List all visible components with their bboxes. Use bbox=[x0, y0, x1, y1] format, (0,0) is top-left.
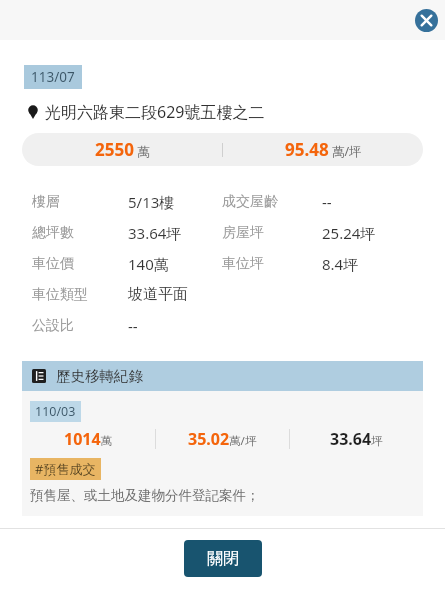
staticText: 總坪數 bbox=[32, 224, 74, 242]
staticText: 車位價 bbox=[32, 255, 74, 273]
staticText: 光明六路東二段629號五樓之二 bbox=[45, 101, 265, 123]
staticText: 95.48 萬/坪 bbox=[285, 138, 362, 161]
staticText: 預售屋、或土地及建物分件登記案件； bbox=[30, 487, 260, 504]
staticText: #預售成交 bbox=[35, 460, 96, 478]
staticText: 公設比 bbox=[32, 317, 74, 335]
staticText: 8.4坪 bbox=[322, 254, 359, 274]
staticText: 車位類型 bbox=[32, 286, 88, 304]
staticText: 5/13樓 bbox=[128, 192, 175, 212]
staticText: 113/07 bbox=[31, 68, 75, 86]
staticText: 關閉 bbox=[207, 549, 239, 569]
staticText: 110/03 bbox=[35, 403, 76, 420]
staticText: 坡道平面 bbox=[128, 285, 188, 304]
staticText: 33.64坪 bbox=[128, 223, 182, 243]
staticText: 33.64坪 bbox=[330, 428, 383, 450]
staticText: 1014萬 bbox=[64, 428, 113, 450]
staticText: 成交屋齡 bbox=[222, 193, 278, 211]
button[interactable]: 關閉 bbox=[184, 540, 262, 577]
staticText: 歷史移轉紀錄 bbox=[56, 367, 143, 385]
staticText: 樓層 bbox=[32, 193, 60, 211]
staticText: -- bbox=[128, 316, 138, 336]
staticText: 35.02萬/坪 bbox=[188, 428, 257, 450]
staticText: 25.24坪 bbox=[322, 223, 376, 243]
staticText: -- bbox=[322, 192, 332, 212]
staticText: 車位坪 bbox=[222, 255, 264, 273]
staticText: 2550 萬 bbox=[95, 138, 150, 161]
staticText: 140萬 bbox=[128, 254, 169, 274]
staticText: 房屋坪 bbox=[222, 224, 264, 242]
button[interactable]: Close bbox=[412, 6, 440, 34]
